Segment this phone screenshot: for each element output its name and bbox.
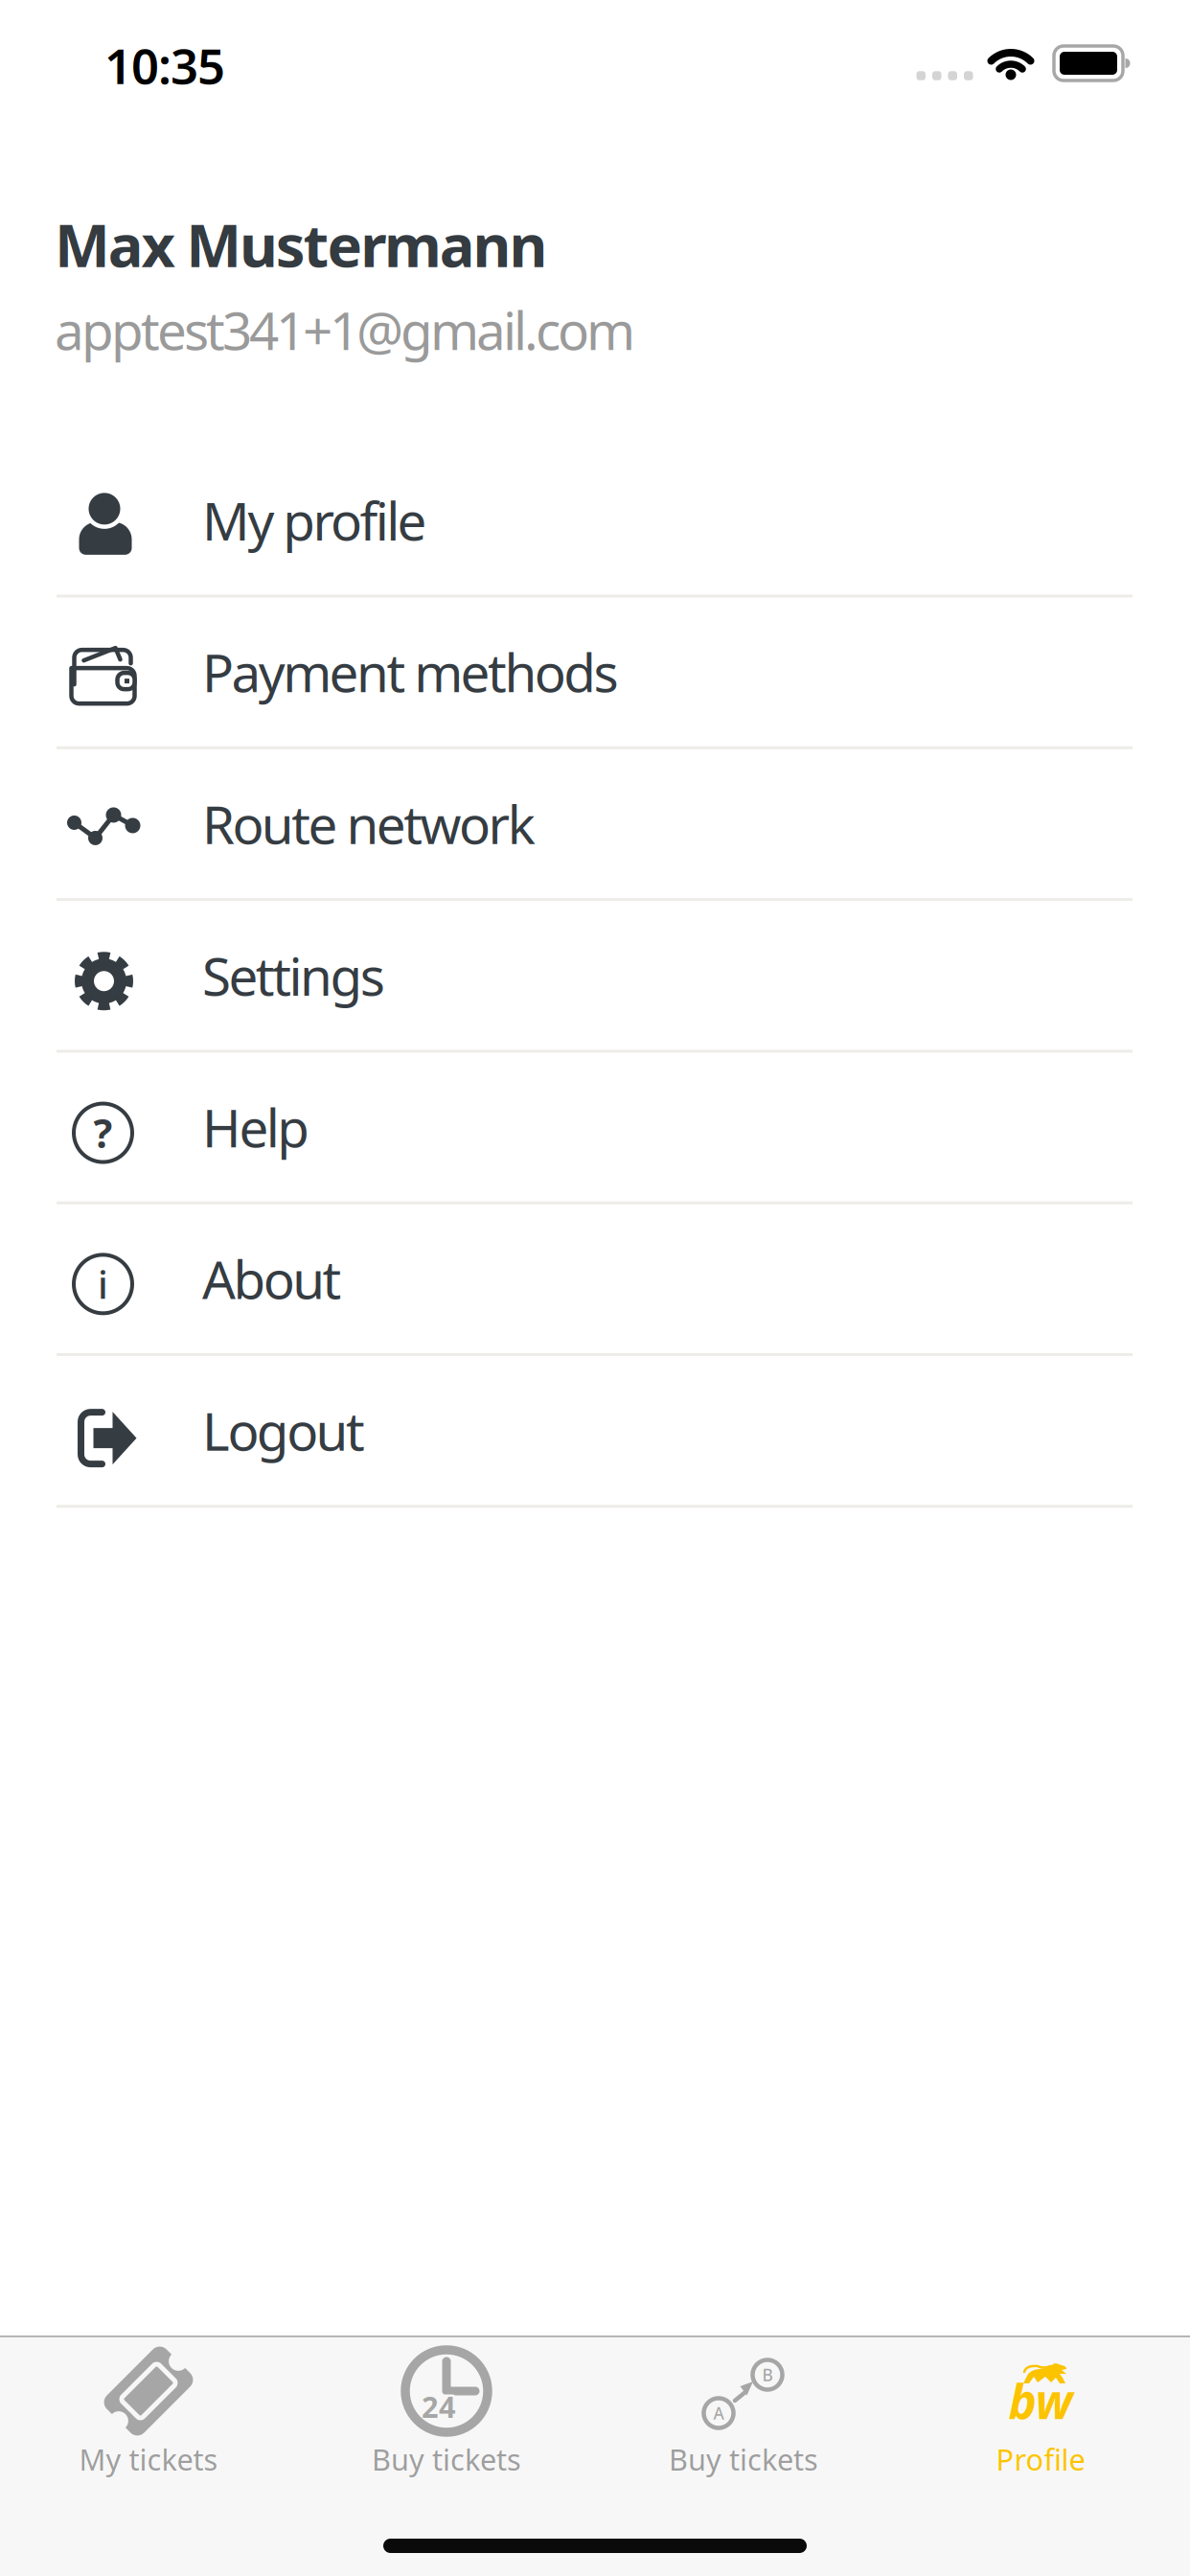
staticText: Logout: [202, 1396, 365, 1465]
staticText: bw: [1008, 2369, 1073, 2432]
button[interactable]: My tickets: [5, 2335, 292, 2576]
staticText: My tickets: [79, 2440, 218, 2479]
staticText: Route network: [202, 789, 535, 858]
button[interactable]: Settings: [0, 900, 1190, 1051]
staticText: B: [762, 2364, 773, 2386]
button[interactable]: A: [600, 2335, 887, 2576]
button[interactable]: i: [0, 1203, 1190, 1354]
staticText: Buy tickets: [372, 2440, 521, 2479]
staticText: About: [202, 1244, 342, 1314]
staticText: i: [98, 1259, 108, 1309]
button[interactable]: ?: [0, 1051, 1190, 1203]
staticText: ?: [93, 1106, 113, 1159]
staticText: 10:35: [104, 33, 225, 97]
button[interactable]: Logout: [0, 1355, 1190, 1506]
button[interactable]: Payment methods: [0, 596, 1190, 748]
staticText: Settings: [202, 941, 385, 1010]
button[interactable]: bw: [897, 2335, 1184, 2576]
staticText: Max Mustermann: [55, 205, 547, 283]
staticText: 24: [422, 2387, 456, 2426]
staticText: A: [713, 2402, 724, 2424]
staticText: My profile: [202, 485, 427, 555]
button[interactable]: 24: [303, 2335, 590, 2576]
button[interactable]: Route network: [0, 748, 1190, 899]
staticText: apptest341+1@gmail.com: [55, 295, 635, 364]
staticText: Buy tickets: [669, 2440, 818, 2479]
staticText: Payment methods: [202, 637, 619, 707]
button[interactable]: My profile: [0, 445, 1190, 596]
staticText: Profile: [996, 2440, 1085, 2479]
staticText: Help: [202, 1092, 310, 1162]
